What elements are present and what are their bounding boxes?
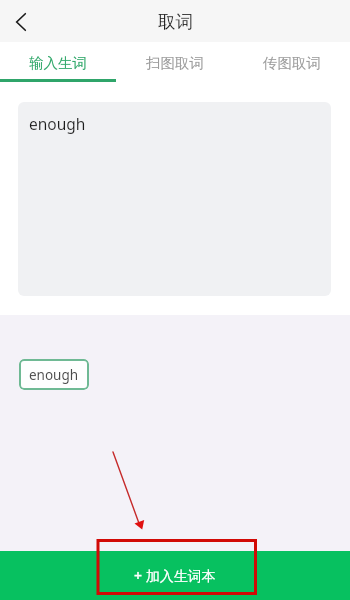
button[interactable]: 扫图取词 <box>116 42 233 82</box>
button[interactable]: enough <box>19 359 89 390</box>
staticText: 扫图取词 <box>146 54 204 72</box>
staticText: 传图取词 <box>263 54 321 72</box>
staticText: enough <box>29 366 79 384</box>
button[interactable]: Back <box>0 0 42 42</box>
staticText: 输入生词 <box>29 54 87 72</box>
button[interactable]: enough <box>18 102 331 296</box>
staticText: enough <box>29 113 86 134</box>
button[interactable]: 传图取词 <box>233 42 350 82</box>
staticText: 取词 <box>158 11 193 33</box>
button[interactable]: 输入生词 <box>0 42 116 82</box>
staticText: + 加入生词本 <box>134 566 216 585</box>
button[interactable]: + 加入生词本 <box>0 551 350 600</box>
